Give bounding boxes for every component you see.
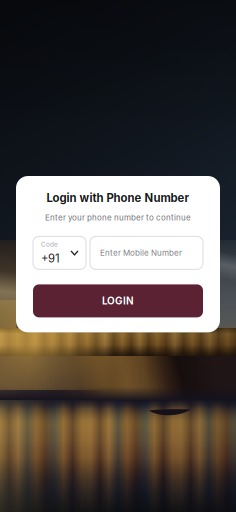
button[interactable]: Country code +91: [33, 236, 86, 269]
staticText: Enter your phone number to continue: [45, 213, 191, 222]
staticText: +91: [41, 251, 60, 265]
button[interactable]: Enter Mobile Number: [90, 236, 203, 269]
button[interactable]: LOGIN: [33, 284, 203, 317]
staticText: LOGIN: [102, 295, 134, 307]
staticText: Enter Mobile Number: [100, 248, 182, 258]
staticText: Code: [41, 241, 58, 248]
staticText: Login with Phone Number: [46, 191, 189, 205]
